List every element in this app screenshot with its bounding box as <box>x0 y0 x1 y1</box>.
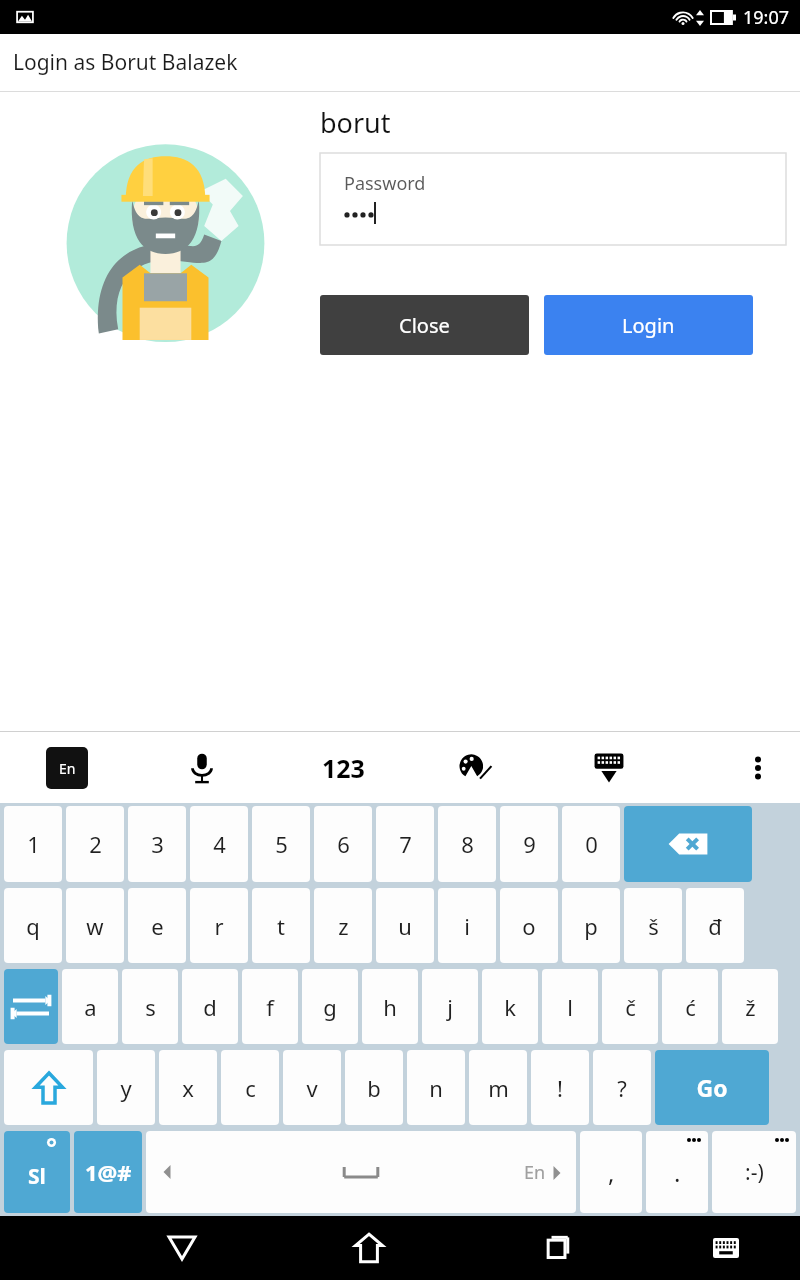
button[interactable]: č <box>602 969 658 1044</box>
staticText: g <box>323 992 337 1022</box>
button[interactable]: ž <box>722 969 778 1044</box>
button[interactable]: p <box>562 888 620 963</box>
staticText: Password <box>344 171 426 196</box>
staticText: n <box>429 1073 443 1103</box>
button[interactable]: Hide keyboard <box>585 744 633 792</box>
button[interactable]: shift <box>4 1050 93 1125</box>
button[interactable]: m <box>469 1050 527 1125</box>
button[interactable]: Home <box>344 1223 394 1273</box>
button[interactable]: , <box>580 1131 642 1213</box>
staticText: En <box>524 1160 546 1185</box>
button[interactable]: y <box>97 1050 155 1125</box>
button[interactable]: u <box>376 888 434 963</box>
button[interactable]: Back <box>157 1223 207 1273</box>
staticText: b <box>367 1073 381 1103</box>
staticText: š <box>648 911 659 941</box>
button[interactable]: q <box>4 888 62 963</box>
button[interactable]: . <box>646 1131 708 1213</box>
staticText: 7 <box>399 829 412 859</box>
button[interactable]: 8 <box>438 806 496 882</box>
button[interactable]: x <box>159 1050 217 1125</box>
button[interactable]: Slovenian layout <box>4 1131 70 1213</box>
button[interactable]: d <box>182 969 238 1044</box>
button[interactable]: o <box>500 888 558 963</box>
button[interactable]: c <box>221 1050 279 1125</box>
staticText: 2 <box>89 829 102 859</box>
button[interactable]: 1 <box>4 806 62 882</box>
button[interactable]: Go <box>655 1050 769 1125</box>
button[interactable]: 5 <box>252 806 310 882</box>
button[interactable]: 0 <box>562 806 620 882</box>
button[interactable]: 3 <box>128 806 186 882</box>
staticText: f <box>266 992 274 1022</box>
staticText: , <box>608 1156 615 1189</box>
button[interactable]: i <box>438 888 496 963</box>
staticText: 4 <box>213 829 226 859</box>
button[interactable]: n <box>407 1050 465 1125</box>
button[interactable]: More options <box>734 744 782 792</box>
staticText: d <box>203 992 217 1022</box>
button[interactable]: ! <box>531 1050 589 1125</box>
button[interactable]: w <box>66 888 124 963</box>
button[interactable]: 6 <box>314 806 372 882</box>
button[interactable]: ? <box>593 1050 651 1125</box>
staticText: h <box>383 992 397 1022</box>
staticText: 123 <box>322 751 365 785</box>
staticText: u <box>398 911 412 941</box>
button[interactable]: z <box>314 888 372 963</box>
staticText: r <box>214 911 224 941</box>
button[interactable]: 4 <box>190 806 248 882</box>
staticText: ž <box>745 992 756 1022</box>
staticText: m <box>488 1073 509 1103</box>
button[interactable]: Keyboard <box>703 1225 749 1271</box>
staticText: x <box>182 1073 194 1103</box>
staticText: y <box>120 1073 132 1103</box>
staticText: 9 <box>523 829 536 859</box>
button[interactable]: đ <box>686 888 744 963</box>
button[interactable]: v <box>283 1050 341 1125</box>
button[interactable]: a <box>62 969 118 1044</box>
button[interactable]: backspace <box>624 806 752 882</box>
button[interactable]: f <box>242 969 298 1044</box>
staticText: 19:07 <box>743 5 790 30</box>
staticText: č <box>625 992 636 1022</box>
button[interactable]: Space <box>146 1131 576 1213</box>
staticText: đ <box>708 911 722 941</box>
button[interactable]: k <box>482 969 538 1044</box>
button[interactable]: 7 <box>376 806 434 882</box>
button[interactable]: 123 <box>316 745 371 791</box>
staticText: En <box>59 759 76 778</box>
button[interactable]: 1@# <box>74 1131 142 1213</box>
button[interactable]: tab <box>4 969 58 1044</box>
button[interactable]: g <box>302 969 358 1044</box>
button[interactable]: t <box>252 888 310 963</box>
staticText: Close <box>399 312 450 339</box>
button[interactable]: š <box>624 888 682 963</box>
button[interactable]: 9 <box>500 806 558 882</box>
staticText: q <box>26 911 40 941</box>
button[interactable]: j <box>422 969 478 1044</box>
button[interactable]: b <box>345 1050 403 1125</box>
staticText: c <box>245 1073 256 1103</box>
staticText: z <box>338 911 349 941</box>
button[interactable]: Theme <box>453 744 501 792</box>
button[interactable]: s <box>122 969 178 1044</box>
button[interactable]: Language English <box>46 747 88 789</box>
staticText: 1@# <box>85 1157 132 1187</box>
button[interactable]: Recents <box>531 1223 581 1273</box>
button[interactable]: 2 <box>66 806 124 882</box>
button[interactable]: r <box>190 888 248 963</box>
button[interactable]: Login <box>544 295 753 355</box>
button[interactable]: :-) <box>712 1131 796 1213</box>
button[interactable]: Voice input <box>180 746 224 790</box>
staticText: borut <box>320 104 391 141</box>
button[interactable]: h <box>362 969 418 1044</box>
staticText: ! <box>557 1073 563 1103</box>
button[interactable]: l <box>542 969 598 1044</box>
staticText: k <box>504 992 516 1022</box>
staticText: i <box>464 911 470 941</box>
button[interactable]: Close <box>320 295 529 355</box>
staticText: v <box>306 1073 318 1103</box>
button[interactable]: ć <box>662 969 718 1044</box>
button[interactable]: e <box>128 888 186 963</box>
